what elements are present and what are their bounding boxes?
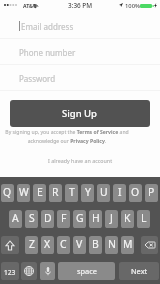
staticText: By signing up, you accept the Terms of S… [5,129,129,144]
staticText: S [29,211,35,225]
button[interactable]: N [105,236,118,254]
button[interactable]: Z [25,236,38,254]
button[interactable]: H [89,210,102,228]
staticText: A [12,211,19,225]
staticText: U [100,185,108,199]
staticText: Sign Up [62,107,98,120]
staticText: 123 [4,268,16,277]
button[interactable]: A [9,210,22,228]
button[interactable]: Email address [0,13,160,39]
button[interactable]: C [57,236,70,254]
button[interactable]: Y [81,184,94,202]
button[interactable]: Switch keyboard [21,262,37,280]
staticText: X [44,237,51,251]
button[interactable]: V [73,236,86,254]
button[interactable]: Sign Up [10,100,150,127]
button[interactable]: M [121,236,134,254]
staticText: G [76,211,84,225]
staticText: V [76,237,83,251]
button[interactable]: Password [0,65,160,91]
staticText: K [124,211,131,225]
staticText: Email address [21,21,74,32]
button[interactable]: Backspace [141,236,158,254]
staticText: N [108,237,116,251]
button[interactable]: E [33,184,46,202]
staticText: I already have an account [48,157,113,164]
staticText: P [148,185,155,199]
button[interactable]: B [89,236,102,254]
button[interactable]: R [49,184,62,202]
button[interactable]: I already have an account [0,157,160,164]
staticText: 3:36 PM [68,1,93,10]
staticText: Z [29,237,35,251]
button[interactable]: Q [1,184,14,202]
staticText: space [77,266,97,276]
staticText: H [92,211,100,225]
staticText: E [37,185,43,199]
button[interactable]: Phone number [0,39,160,65]
button[interactable]: K [121,210,134,228]
button[interactable]: D [41,210,54,228]
button[interactable]: S [25,210,38,228]
button[interactable]: 123 [1,262,19,280]
staticText: Q [3,185,12,199]
button[interactable]: Dictate [40,262,55,280]
staticText: T [69,185,75,199]
button[interactable]: J [105,210,118,228]
button[interactable]: T [65,184,78,202]
staticText: F [61,211,67,225]
staticText: L [141,211,147,225]
button[interactable]: U [97,184,110,202]
button[interactable]: space [58,262,115,280]
button[interactable]: L [137,210,150,228]
staticText: M [123,237,133,251]
staticText: J [110,211,113,225]
button[interactable]: X [41,236,54,254]
button[interactable]: W [17,184,30,202]
staticText: Password [19,73,56,84]
button[interactable]: G [73,210,86,228]
button[interactable]: F [57,210,70,228]
staticText: C [60,237,67,251]
staticText: B [92,237,99,251]
button[interactable]: P [145,184,158,202]
staticText: Y [85,185,91,199]
staticText: I [118,185,122,199]
button[interactable]: Shift [1,236,19,254]
staticText: AT&T [23,2,36,9]
button[interactable]: O [129,184,142,202]
staticText: R [52,185,59,199]
staticText: 100% [125,2,140,10]
staticText: O [131,185,140,199]
staticText: D [44,211,52,225]
staticText: W [19,185,29,199]
staticText: Phone number [19,47,76,58]
button[interactable]: Next [119,262,159,280]
button[interactable]: I [113,184,126,202]
button[interactable]: By signing up, you accept the Terms of S… [5,129,155,144]
staticText: Next [131,266,148,276]
